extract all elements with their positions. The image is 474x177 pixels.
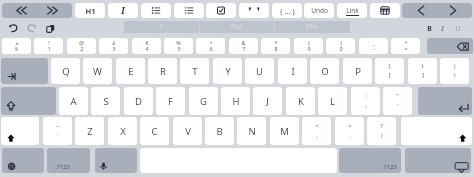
- button[interactable]: * 8: [261, 38, 290, 54]
- button[interactable]: O: [310, 58, 339, 84]
- button[interactable]: Checklist: [206, 3, 236, 18]
- button[interactable]: F: [156, 87, 185, 115]
- button[interactable]: Shift: [1, 117, 39, 145]
- staticText: ±: [15, 39, 19, 46]
- button[interactable]: T: [180, 58, 209, 84]
- staticText: :: [365, 92, 367, 100]
- staticText: `: [57, 132, 59, 140]
- button[interactable]: J: [253, 87, 282, 115]
- button[interactable]: Q: [51, 58, 80, 84]
- button[interactable]: E: [116, 58, 145, 84]
- button[interactable]: Numbers and symbols: [47, 148, 90, 173]
- staticText: Y: [225, 65, 231, 78]
- staticText: ,: [316, 132, 318, 140]
- button[interactable]: @ 2: [67, 38, 96, 54]
- button[interactable]: } ]: [408, 58, 437, 84]
- button[interactable]: Previous formatting page: [2, 3, 72, 18]
- button[interactable]: Backspace: [427, 38, 473, 54]
- button[interactable]: D: [124, 87, 153, 115]
- button[interactable]: Dictate: [95, 148, 137, 173]
- button[interactable]: Bulleted list: [141, 3, 171, 18]
- button[interactable]: € 4: [132, 38, 161, 54]
- staticText: 0: [339, 45, 343, 52]
- button[interactable]: ? /: [367, 117, 396, 145]
- button[interactable]: ^ 6: [196, 38, 225, 54]
- button[interactable]: Italic: [436, 22, 448, 35]
- button[interactable]: Tab: [1, 58, 48, 84]
- button[interactable]: Bold: [423, 22, 435, 35]
- button[interactable]: Quote: [239, 3, 269, 18]
- button[interactable]: Paste: [43, 22, 58, 35]
- button[interactable]: & 7: [229, 38, 258, 54]
- button[interactable]: < ,: [302, 117, 331, 145]
- button[interactable]: Underline: [452, 22, 464, 35]
- staticText: {: [388, 62, 391, 70]
- staticText: F: [168, 95, 173, 108]
- button[interactable]: Caps lock: [1, 87, 56, 115]
- button[interactable]: W: [83, 58, 112, 84]
- button[interactable]: C: [140, 117, 169, 145]
- button[interactable]: Link: [337, 3, 367, 18]
- button[interactable]: £ 3: [99, 38, 128, 54]
- staticText: Z: [87, 125, 93, 138]
- staticText: W: [93, 65, 102, 78]
- button[interactable]: X: [108, 117, 137, 145]
- button[interactable]: Table: [370, 3, 400, 18]
- button[interactable]: H: [221, 87, 250, 115]
- button[interactable]: R: [148, 58, 177, 84]
- button[interactable]: I'm: [274, 21, 349, 33]
- button[interactable]: Numbers and symbols: [339, 148, 401, 173]
- button[interactable]: G: [189, 87, 218, 115]
- staticText: =: [404, 45, 408, 52]
- button[interactable]: L: [318, 87, 347, 115]
- button[interactable]: B: [205, 117, 234, 145]
- button[interactable]: Previous or next field: [402, 3, 472, 18]
- staticText: >: [348, 122, 352, 130]
- button[interactable]: Y: [213, 58, 242, 84]
- button[interactable]: Undo: [6, 22, 21, 35]
- button[interactable]: Redo: [24, 22, 39, 35]
- button[interactable]: Z: [75, 117, 104, 145]
- button[interactable]: Heading 1: [75, 3, 105, 18]
- button[interactable]: Hide keyboard: [405, 148, 471, 173]
- staticText: N: [248, 125, 256, 138]
- button[interactable]: Return: [418, 87, 472, 115]
- button[interactable]: ) 0: [326, 38, 355, 54]
- button[interactable]: P: [343, 58, 372, 84]
- button[interactable]: Parentheses: [272, 3, 302, 18]
- button[interactable]: ! 1: [34, 38, 63, 54]
- button[interactable]: { [: [375, 58, 404, 84]
- button[interactable]: Switch keyboard: [2, 148, 44, 173]
- staticText: *: [274, 39, 278, 46]
- button[interactable]: V: [173, 117, 202, 145]
- button[interactable]: Italic: [108, 3, 138, 18]
- staticText: C: [151, 125, 158, 138]
- button[interactable]: K: [286, 87, 315, 115]
- button[interactable]: U: [245, 58, 274, 84]
- button[interactable]: ± §: [2, 38, 31, 54]
- button[interactable]: M: [270, 117, 299, 145]
- staticText: ?: [380, 122, 383, 130]
- button[interactable]: > .: [335, 117, 364, 145]
- button[interactable]: A: [59, 87, 88, 115]
- staticText: ": [396, 92, 399, 100]
- button[interactable]: The: [199, 21, 274, 33]
- button[interactable]: N: [237, 117, 266, 145]
- button[interactable]: " ': [383, 87, 412, 115]
- button[interactable]: S: [91, 87, 120, 115]
- button[interactable]: % 5: [164, 38, 193, 54]
- button[interactable]: + =: [391, 38, 420, 54]
- staticText: G: [200, 95, 207, 108]
- button[interactable]: : ;: [351, 87, 380, 115]
- button[interactable]: Undo: [304, 3, 334, 18]
- button[interactable]: Numbered list: [174, 3, 204, 18]
- button[interactable]: ~ `: [43, 117, 72, 145]
- button[interactable]: _ -: [359, 38, 388, 54]
- button[interactable]: | \: [440, 58, 469, 84]
- button[interactable]: Shift: [401, 117, 472, 145]
- button[interactable]: I: [278, 58, 307, 84]
- button[interactable]: ( 9: [294, 38, 323, 54]
- staticText: ~: [56, 122, 60, 130]
